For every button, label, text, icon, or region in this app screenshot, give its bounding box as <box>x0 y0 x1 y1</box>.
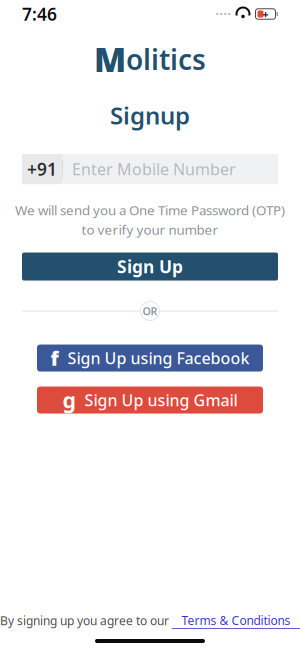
staticText: to verify your number <box>81 221 218 238</box>
staticText: f <box>50 345 58 371</box>
staticText: Sign Up using Facebook <box>67 347 249 369</box>
staticText: + <box>262 7 268 21</box>
staticText: g <box>62 386 75 414</box>
staticText: We will send you a One Time Password (OT… <box>15 201 285 219</box>
button[interactable]: Sign Up <box>22 252 278 280</box>
staticText: Enter Mobile Number <box>72 158 236 180</box>
staticText: By signing up you agree to our <box>0 613 169 629</box>
staticText: M <box>94 37 126 81</box>
staticText: Sign Up <box>117 255 183 278</box>
staticText: OR <box>142 304 157 318</box>
button[interactable]: Terms & Conditions <box>172 612 300 629</box>
staticText: +91 <box>27 158 57 181</box>
staticText: Sign Up using Gmail <box>84 389 237 411</box>
staticText: Terms & Conditions <box>181 612 290 628</box>
button[interactable]: f <box>37 344 263 371</box>
button[interactable]: g <box>37 386 263 413</box>
staticText: olitics <box>126 40 206 78</box>
staticText: 7:46 <box>22 2 57 25</box>
staticText: Signup <box>110 99 190 131</box>
